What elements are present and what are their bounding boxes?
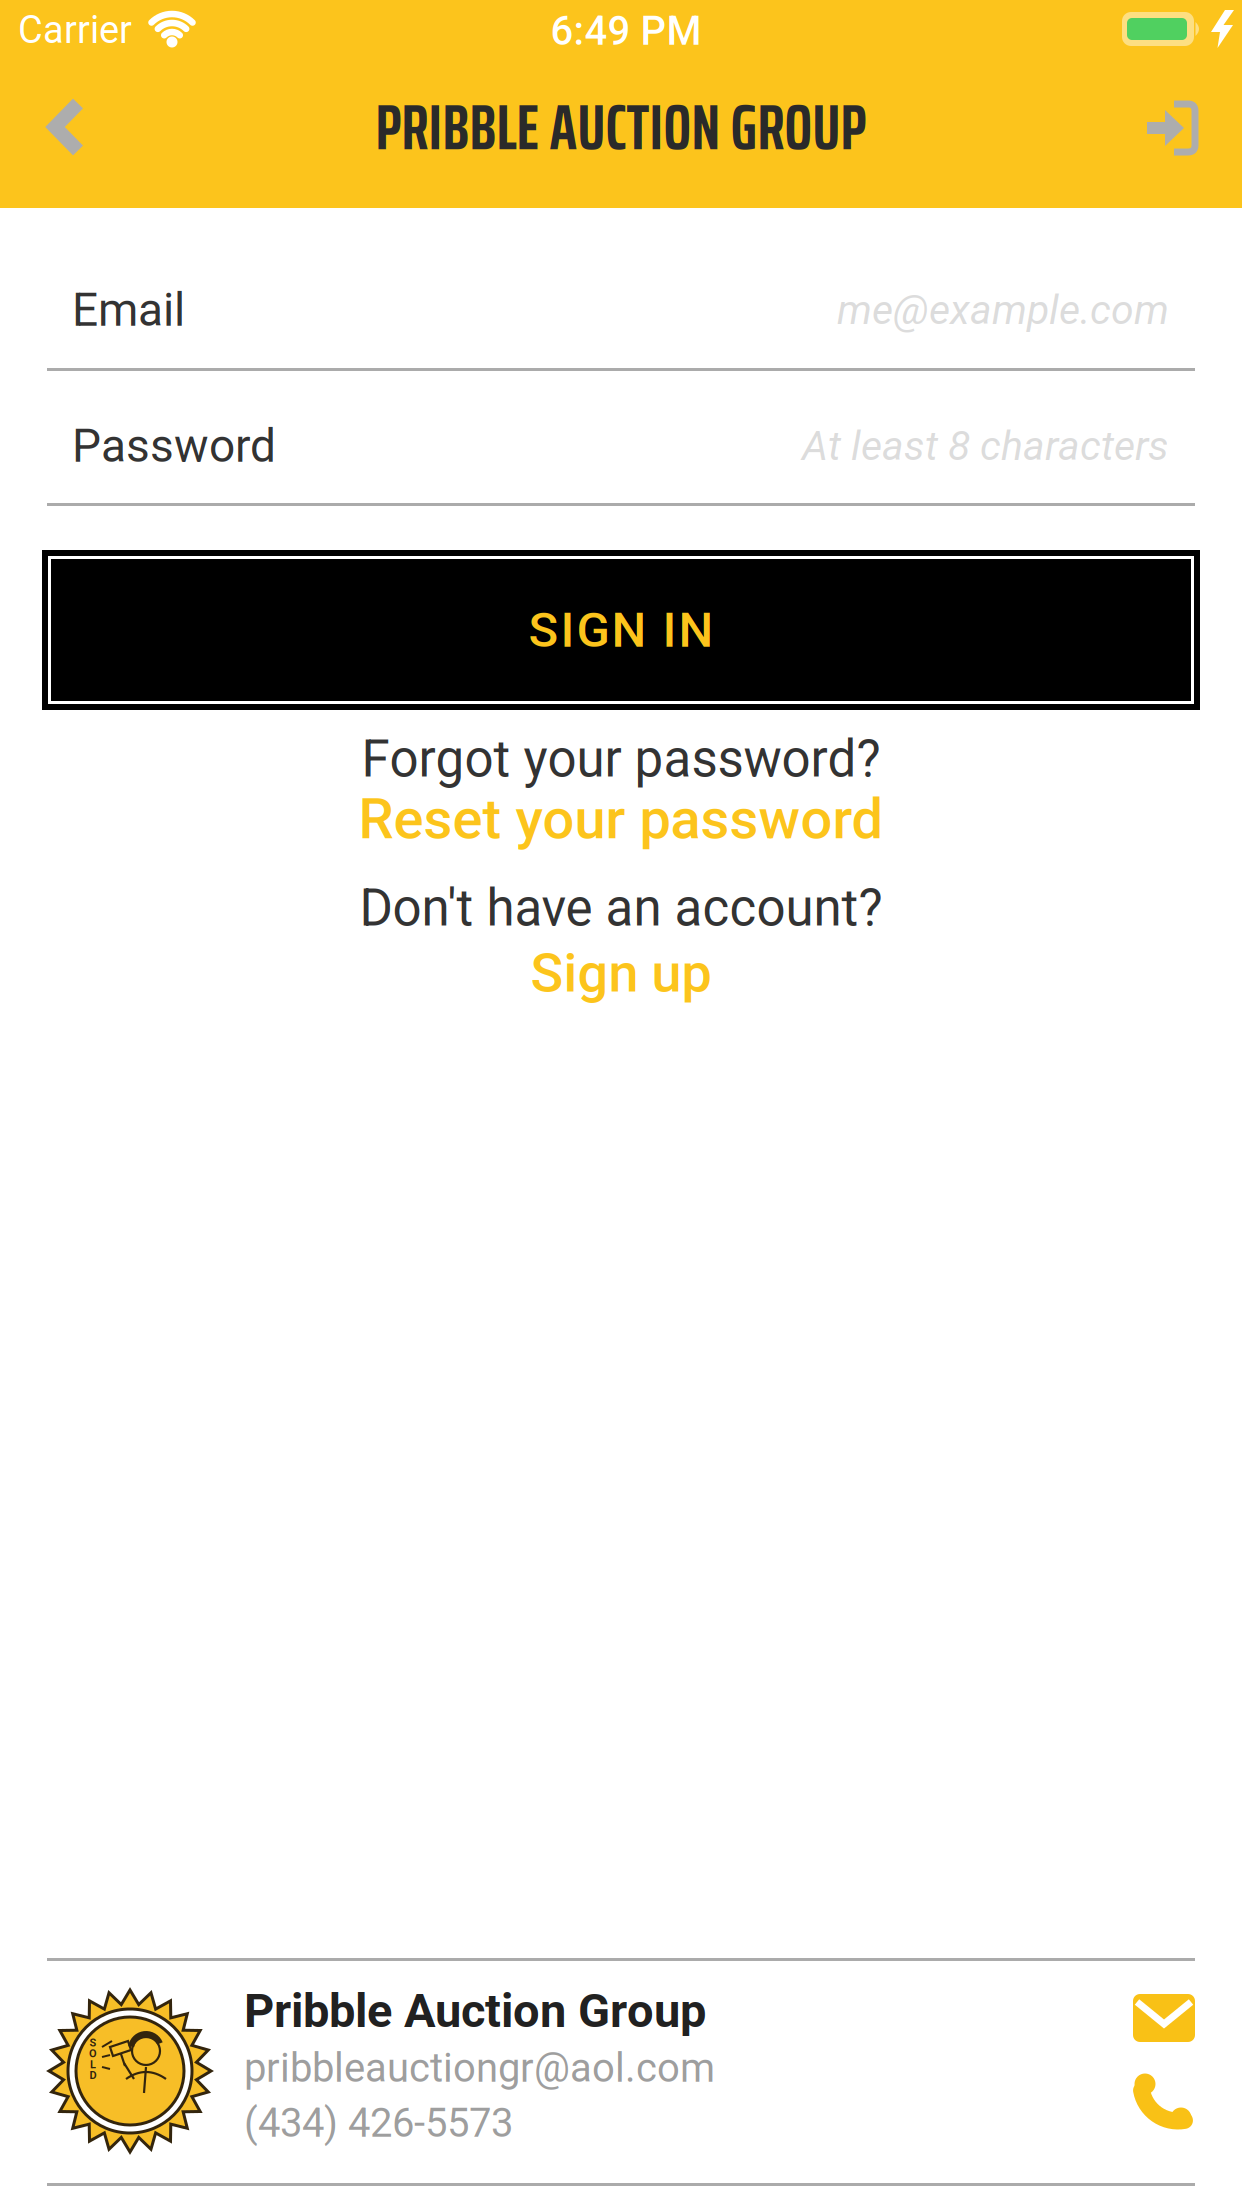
button[interactable]: Sign up: [530, 938, 711, 1003]
staticText: (434) 426-5573: [244, 2100, 513, 2146]
staticText: Carrier: [18, 8, 132, 52]
staticText: D: [89, 2069, 96, 2082]
staticText: SIGN IN: [528, 601, 713, 659]
staticText: S: [89, 2036, 96, 2049]
staticText: PRIBBLE AUCTION GROUP: [375, 77, 866, 177]
staticText: O: [89, 2047, 97, 2060]
staticText: At least 8 characters: [802, 422, 1169, 470]
staticText: pribbleauctiongr@aol.com: [244, 2045, 715, 2091]
staticText: me@example.com: [837, 286, 1169, 334]
button[interactable]: Back: [35, 84, 97, 169]
staticText: Sign up: [530, 941, 711, 1005]
button[interactable]: Reset your password: [358, 789, 883, 849]
button[interactable]: Email: [1133, 1994, 1195, 2042]
staticText: Reset your password: [358, 786, 883, 852]
staticText: L: [90, 2058, 96, 2071]
staticText: Pribble Auction Group: [244, 1983, 706, 2039]
staticText: Email: [72, 283, 185, 337]
button[interactable]: Call: [1135, 2071, 1195, 2129]
textField[interactable]: me@example.com: [0, 283, 1242, 337]
staticText: Forgot your password?: [361, 729, 880, 789]
staticText: 6:49 PM: [550, 8, 701, 54]
button[interactable]: Sign in: [1135, 85, 1211, 171]
textField[interactable]: At least 8 characters: [0, 419, 1242, 473]
button[interactable]: SIGN IN: [42, 550, 1200, 710]
staticText: Password: [72, 419, 276, 473]
staticText: Don't have an account?: [359, 878, 882, 938]
